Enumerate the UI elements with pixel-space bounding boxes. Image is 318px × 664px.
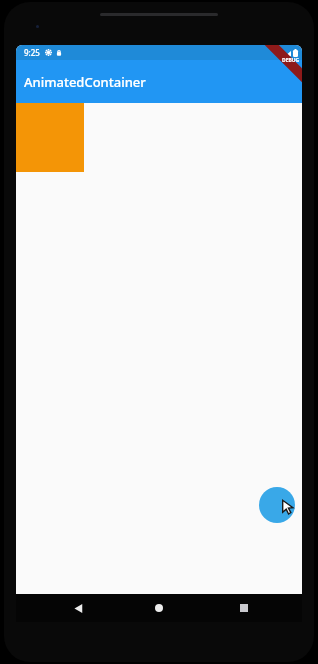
button[interactable]: Home — [149, 598, 169, 618]
button[interactable]: Back — [68, 598, 88, 618]
staticText: DEBUG — [282, 57, 300, 64]
button[interactable]: Recents — [234, 598, 254, 618]
button[interactable]: Animate — [259, 487, 295, 523]
staticText: AnimatedContainer — [24, 73, 146, 91]
staticText: 9:25 — [24, 47, 40, 58]
